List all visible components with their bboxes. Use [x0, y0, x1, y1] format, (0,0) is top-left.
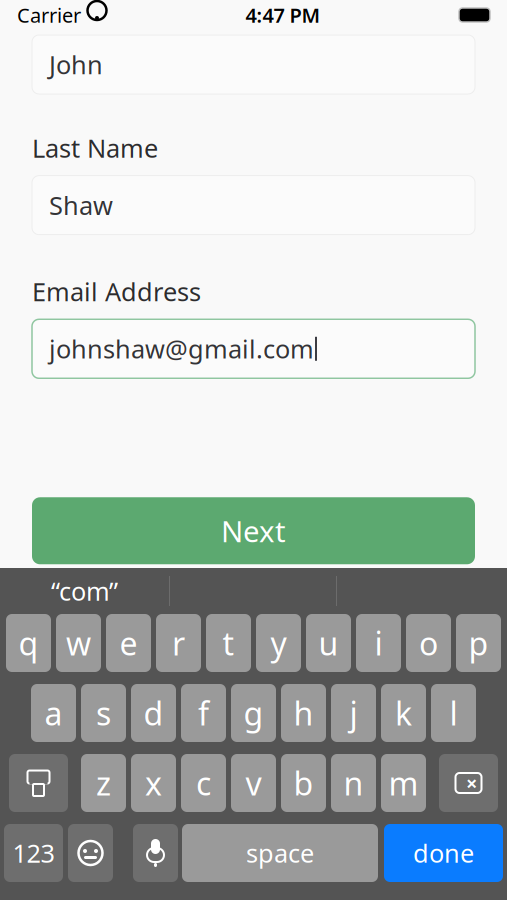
- staticText: Last Name: [32, 131, 158, 165]
- staticText: b: [293, 762, 313, 804]
- staticText: j: [349, 692, 357, 734]
- staticText: g: [243, 692, 263, 734]
- staticText: ×: [466, 770, 477, 796]
- staticText: e: [119, 622, 137, 664]
- staticText: r: [172, 622, 185, 664]
- button[interactable]: v: [231, 754, 276, 812]
- staticText: p: [468, 622, 488, 664]
- staticText: k: [395, 692, 412, 734]
- button[interactable]: w: [56, 614, 101, 672]
- staticText: done: [413, 836, 474, 870]
- button[interactable]: 123: [4, 824, 63, 882]
- button[interactable]: t: [206, 614, 251, 672]
- staticText: a: [44, 692, 62, 734]
- button[interactable]: f: [181, 684, 226, 742]
- button[interactable]: k: [381, 684, 426, 742]
- staticText: q: [18, 622, 38, 664]
- button[interactable]: space: [182, 824, 378, 882]
- button[interactable]: Delete: [439, 754, 498, 812]
- staticText: h: [293, 692, 313, 734]
- staticText: f: [198, 692, 209, 734]
- button[interactable]: m: [381, 754, 426, 812]
- staticText: 4:47 PM: [245, 2, 320, 28]
- staticText: o: [419, 622, 438, 664]
- staticText: w: [66, 622, 91, 664]
- staticText: v: [245, 762, 261, 804]
- staticText: “com”: [51, 574, 118, 608]
- button[interactable]: y: [256, 614, 301, 672]
- staticText: l: [449, 692, 457, 734]
- staticText: 123: [12, 836, 54, 870]
- button[interactable]: z: [81, 754, 126, 812]
- button[interactable]: s: [81, 684, 126, 742]
- button[interactable]: j: [331, 684, 376, 742]
- staticText: u: [318, 622, 338, 664]
- staticText: johnshaw@gmail.com: [49, 332, 314, 366]
- staticText: space: [246, 836, 314, 870]
- button[interactable]: o: [406, 614, 451, 672]
- button[interactable]: “com”: [0, 568, 169, 614]
- button[interactable]: Dictate: [133, 824, 178, 882]
- button[interactable]: n: [331, 754, 376, 812]
- button[interactable]: g: [231, 684, 276, 742]
- button[interactable]: h: [281, 684, 326, 742]
- button[interactable]: John: [32, 35, 475, 94]
- button[interactable]: Emoji: [68, 824, 113, 882]
- button[interactable]: i: [356, 614, 401, 672]
- button[interactable]: Shaw: [32, 176, 475, 235]
- button[interactable]: e: [106, 614, 151, 672]
- button[interactable]: c: [181, 754, 226, 812]
- button[interactable]: Next: [32, 497, 475, 564]
- button[interactable]: r: [156, 614, 201, 672]
- staticText: x: [145, 762, 162, 804]
- staticText: Email Address: [32, 275, 201, 308]
- button[interactable]: done: [384, 824, 503, 882]
- button[interactable]: Shift: [9, 754, 68, 812]
- button[interactable]: d: [131, 684, 176, 742]
- staticText: z: [96, 762, 111, 804]
- button[interactable]: x: [131, 754, 176, 812]
- button[interactable]: a: [31, 684, 76, 742]
- staticText: Next: [221, 511, 286, 550]
- staticText: m: [388, 762, 418, 804]
- button[interactable]: u: [306, 614, 351, 672]
- staticText: i: [374, 622, 382, 664]
- staticText: d: [143, 692, 163, 734]
- staticText: c: [196, 762, 211, 804]
- staticText: Carrier: [17, 2, 81, 28]
- staticText: Shaw: [49, 188, 113, 222]
- staticText: n: [343, 762, 363, 804]
- button[interactable]: johnshaw@gmail.com: [32, 319, 475, 378]
- button[interactable]: p: [456, 614, 501, 672]
- staticText: s: [96, 692, 111, 734]
- button[interactable]: l: [431, 684, 476, 742]
- staticText: y: [270, 622, 286, 664]
- button[interactable]: b: [281, 754, 326, 812]
- staticText: John: [49, 48, 103, 81]
- button[interactable]: q: [6, 614, 51, 672]
- staticText: t: [222, 622, 234, 664]
